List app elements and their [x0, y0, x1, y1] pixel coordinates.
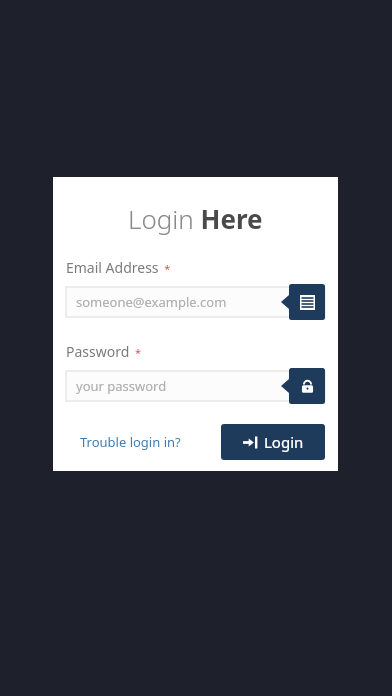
staticText: Login Here	[128, 201, 263, 236]
button[interactable]: Trouble login in?	[66, 427, 195, 457]
staticText: Email Address *	[66, 258, 171, 277]
staticText: Login	[264, 432, 304, 452]
staticText: Password *	[66, 342, 142, 361]
button[interactable]: someone@example.com	[66, 287, 325, 317]
button[interactable]: Login	[221, 424, 325, 460]
staticText: Trouble login in?	[80, 433, 181, 451]
button[interactable]: your password	[66, 371, 325, 401]
button[interactable]: Field icon	[281, 368, 325, 404]
staticText: someone@example.com	[76, 293, 227, 311]
staticText: your password	[76, 377, 167, 395]
button[interactable]: Field icon	[281, 284, 325, 320]
